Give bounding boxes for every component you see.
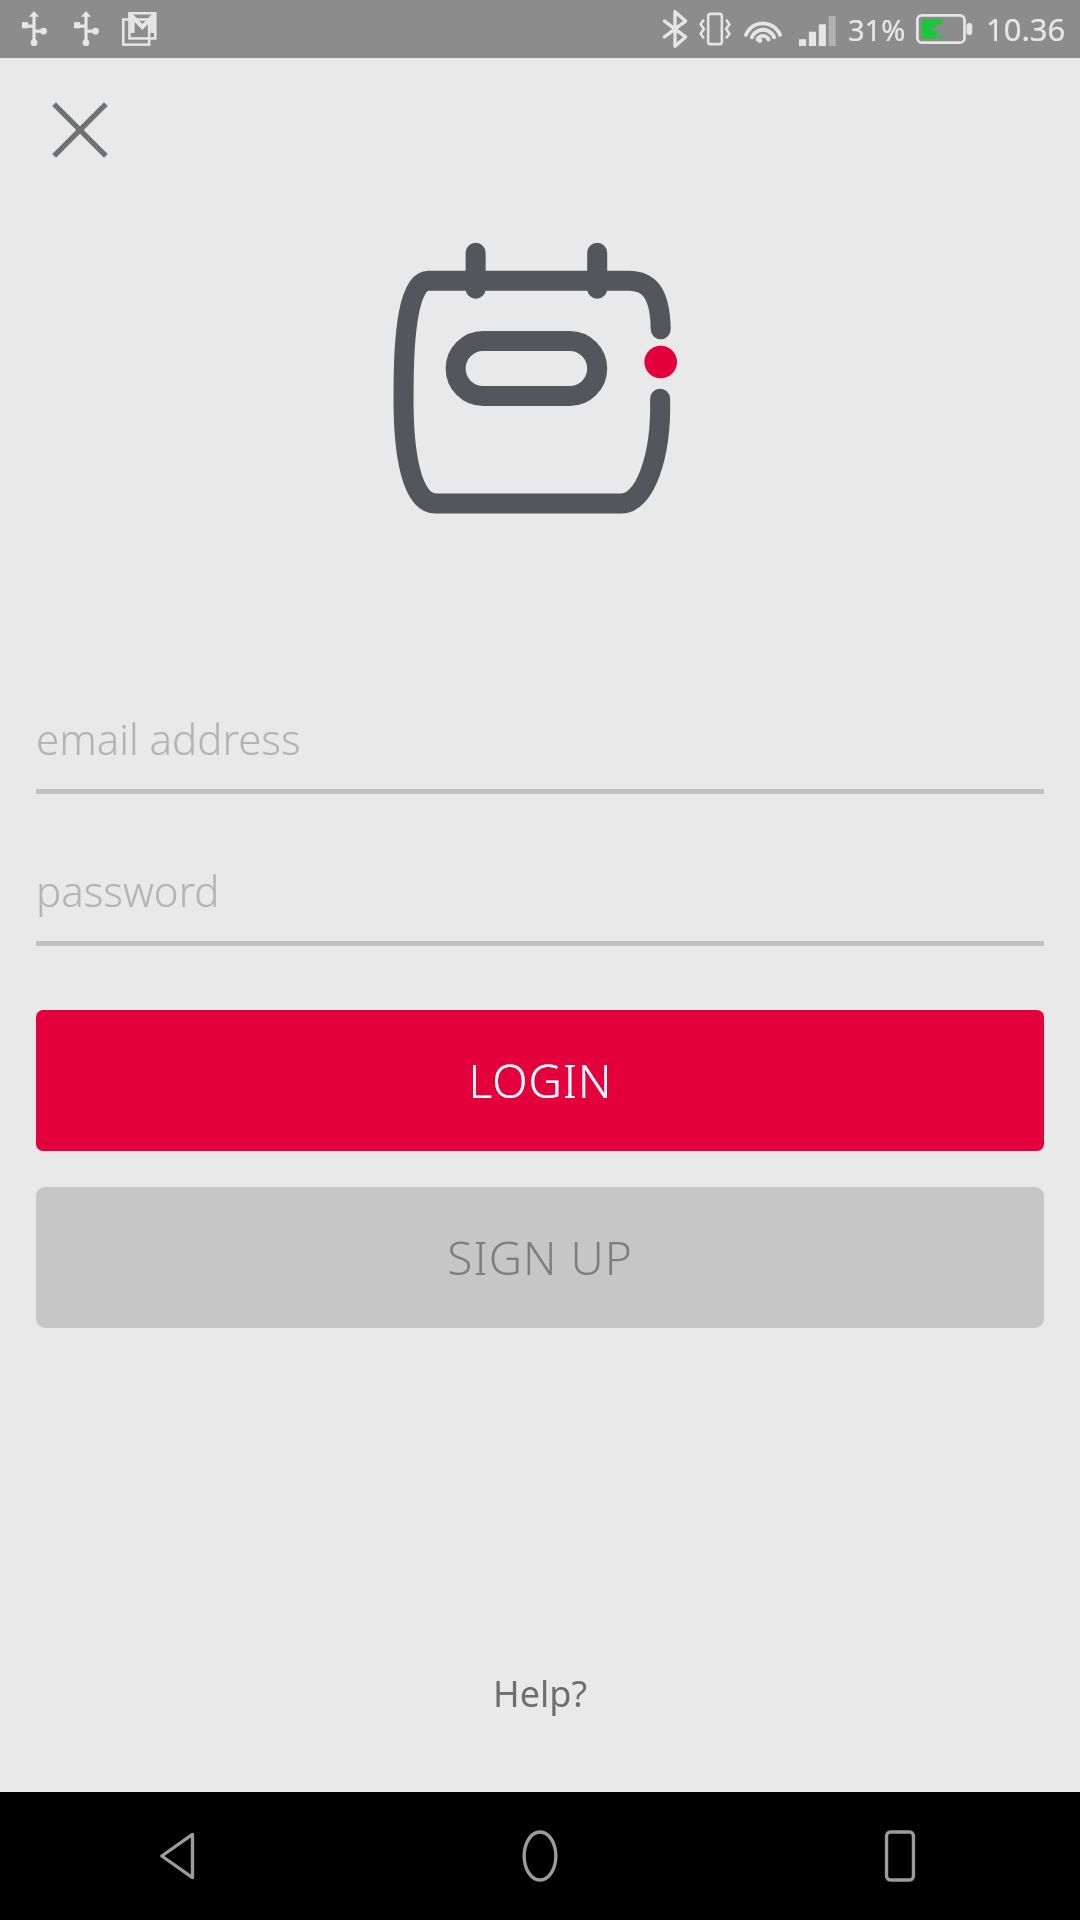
staticText: 10.36 xyxy=(986,8,1066,50)
staticText: SIGN UP xyxy=(447,1226,633,1289)
button[interactable]: Help? xyxy=(463,1655,618,1732)
button[interactable]: Back xyxy=(0,1792,360,1920)
staticText: 31% xyxy=(848,10,906,49)
staticText: password xyxy=(36,862,220,919)
button[interactable]: Home xyxy=(360,1792,720,1920)
button[interactable]: SIGN UP xyxy=(36,1187,1044,1328)
staticText: Help? xyxy=(493,1669,588,1718)
button[interactable]: LOGIN xyxy=(36,1010,1044,1151)
staticText: LOGIN xyxy=(468,1049,613,1112)
button[interactable]: email address xyxy=(36,710,1044,794)
button[interactable]: password xyxy=(36,862,1044,946)
button[interactable]: Recents xyxy=(720,1792,1080,1920)
staticText: email address xyxy=(36,710,301,767)
button[interactable]: Close xyxy=(34,84,126,176)
